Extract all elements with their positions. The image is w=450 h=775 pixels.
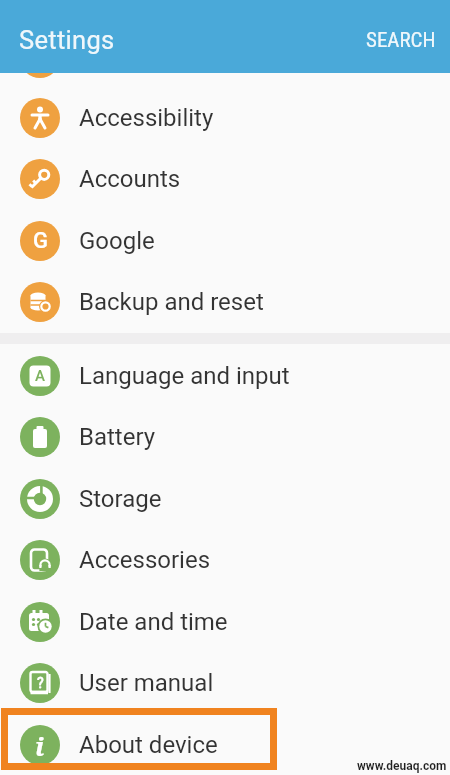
staticText: SEARCH — [366, 28, 436, 53]
button[interactable]: Accessories — [0, 529, 450, 590]
staticText: ? — [37, 675, 44, 691]
staticText: Accessories — [79, 546, 211, 574]
button[interactable]: ? — [0, 652, 450, 713]
staticText: User manual — [79, 669, 214, 697]
staticText: Language and input — [79, 362, 290, 390]
staticText: Settings — [19, 25, 115, 55]
staticText: Battery — [79, 423, 156, 451]
staticText: Storage — [79, 485, 162, 513]
button[interactable]: Date and time — [0, 591, 450, 652]
staticText: Google — [79, 227, 155, 255]
staticText: A — [35, 367, 45, 385]
staticText: i — [35, 728, 45, 763]
button[interactable]: Backup and reset — [0, 271, 450, 332]
button[interactable]: SEARCH — [360, 22, 442, 59]
button[interactable]: Accounts — [0, 148, 450, 209]
button[interactable]: Storage — [0, 468, 450, 529]
staticText: Accounts — [79, 165, 181, 193]
staticText: About device — [79, 731, 218, 759]
staticText: Accessibility — [79, 104, 214, 132]
staticText: Backup and reset — [79, 288, 264, 316]
button[interactable]: A — [0, 345, 450, 406]
staticText: www.deuaq.com — [357, 759, 447, 773]
button[interactable]: G — [0, 210, 450, 271]
staticText: G — [33, 228, 48, 254]
button[interactable]: i — [0, 714, 450, 775]
button[interactable]: Battery — [0, 406, 450, 467]
button[interactable]: Accessibility — [0, 87, 450, 148]
staticText: Date and time — [79, 608, 228, 636]
